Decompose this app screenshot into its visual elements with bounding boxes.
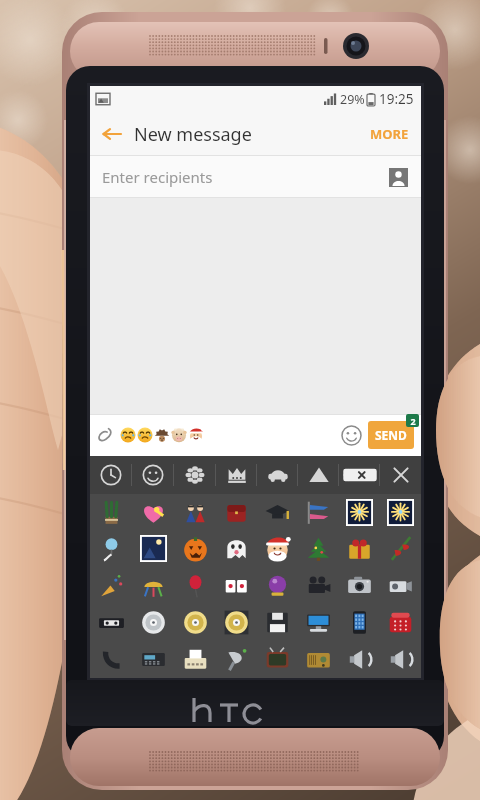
button[interactable]: Emoji [216, 641, 257, 678]
staticText: SEND [375, 427, 407, 443]
button[interactable]: Emoji [298, 567, 339, 604]
button[interactable]: Emoji [132, 567, 174, 604]
staticText: Enter recipients [102, 167, 213, 187]
button[interactable]: Places [298, 456, 339, 494]
button[interactable]: Emoji [257, 494, 298, 530]
button[interactable]: Emoji [257, 604, 298, 641]
button[interactable]: Attach [90, 414, 120, 456]
button[interactable]: Emoji [339, 530, 380, 567]
button[interactable]: Emoji [90, 530, 132, 567]
button[interactable]: Add recipient from contacts [385, 164, 411, 190]
button[interactable]: Emoji [216, 567, 257, 604]
button[interactable]: Emoji [216, 530, 257, 567]
button[interactable]: Emoji keyboard [334, 418, 368, 452]
button[interactable]: Emoji [380, 641, 421, 678]
button[interactable]: Emoji [298, 494, 339, 530]
button[interactable]: Emoji [90, 641, 132, 678]
button[interactable]: Emoji [380, 530, 421, 567]
button[interactable]: Emoji [257, 641, 298, 678]
button[interactable]: Emoji [380, 604, 421, 641]
button[interactable]: Close [380, 456, 421, 494]
button[interactable]: Emoji [298, 604, 339, 641]
button[interactable]: Emoji [174, 604, 216, 641]
button[interactable]: Emoji [174, 641, 216, 678]
staticText: MORE [370, 125, 409, 143]
button[interactable]: Travel [257, 456, 298, 494]
button[interactable]: MORE [358, 112, 421, 156]
button[interactable]: Emoji [380, 494, 421, 530]
button[interactable]: Emoji [174, 567, 216, 604]
button[interactable]: Nature [174, 456, 216, 494]
button[interactable]: Emoji [298, 641, 339, 678]
button[interactable]: Recent [90, 456, 132, 494]
button[interactable]: Emoji [380, 567, 421, 604]
button[interactable]: Emoji [257, 567, 298, 604]
staticText: New message [134, 122, 252, 147]
button[interactable]: Emoji [90, 494, 132, 530]
button[interactable]: Emoji [298, 530, 339, 567]
button[interactable]: Emoji [339, 567, 380, 604]
button[interactable]: Emoji [257, 530, 298, 567]
button[interactable]: Emoji [132, 530, 174, 567]
button[interactable]: Emoji [132, 604, 174, 641]
button[interactable]: Emoji [132, 641, 174, 678]
button[interactable]: Emoji [216, 494, 257, 530]
button[interactable]: Emoji [339, 494, 380, 530]
button[interactable]: Objects [216, 456, 257, 494]
button[interactable]: Emoji [174, 494, 216, 530]
button[interactable]: Emoji [90, 604, 132, 641]
button[interactable]: Emoji [339, 641, 380, 678]
button[interactable]: Emoji [339, 604, 380, 641]
button[interactable]: Emoji [132, 494, 174, 530]
button[interactable]: Emoji [216, 604, 257, 641]
staticText: 2 [410, 415, 416, 427]
button[interactable]: Back [90, 112, 134, 156]
button[interactable]: SEND [368, 421, 414, 449]
staticText: 29% [340, 91, 365, 108]
button[interactable]: Smileys [132, 456, 174, 494]
button[interactable]: Emoji [90, 567, 132, 604]
staticText: 19:25 [379, 90, 414, 108]
button[interactable]: Backspace [339, 456, 380, 494]
button[interactable]: Enter recipients [90, 156, 421, 198]
button[interactable]: Emoji [174, 530, 216, 567]
